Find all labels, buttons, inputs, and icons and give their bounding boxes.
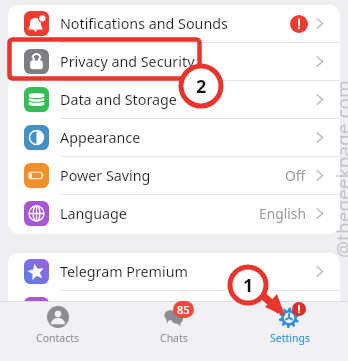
staticText: Appearance <box>60 128 141 147</box>
button[interactable]: Privacy and Security <box>8 43 340 80</box>
button[interactable]: Appearance <box>8 119 340 156</box>
staticText: Off <box>285 166 306 185</box>
button[interactable]: Language <box>8 195 340 232</box>
button[interactable]: Notifications and Sounds <box>8 5 340 42</box>
staticText: @thegeekpage.com <box>331 80 348 258</box>
staticText: English <box>259 204 306 223</box>
staticText: Telegram Premium <box>60 262 188 281</box>
button[interactable]: Contacts <box>0 301 116 361</box>
staticText: Notifications and Sounds <box>60 14 228 33</box>
staticText: Data and Storage <box>60 90 177 109</box>
button[interactable]: 85 <box>116 301 232 361</box>
staticText: Language <box>60 204 127 223</box>
staticText: 85 <box>177 302 190 317</box>
button[interactable]: Telegram Premium <box>8 253 340 290</box>
staticText: Settings <box>270 331 310 345</box>
staticText: 2 <box>196 74 207 98</box>
button[interactable]: Data and Storage <box>8 81 340 118</box>
button[interactable]: Power Saving <box>8 157 340 194</box>
staticText: Contacts <box>36 331 80 345</box>
staticText: 1 <box>243 273 254 297</box>
button[interactable] <box>8 291 340 328</box>
staticText: Privacy and Security <box>60 52 195 71</box>
button[interactable]: Settings <box>232 301 348 361</box>
staticText: Chats <box>160 331 188 345</box>
staticText: Power Saving <box>60 166 151 185</box>
